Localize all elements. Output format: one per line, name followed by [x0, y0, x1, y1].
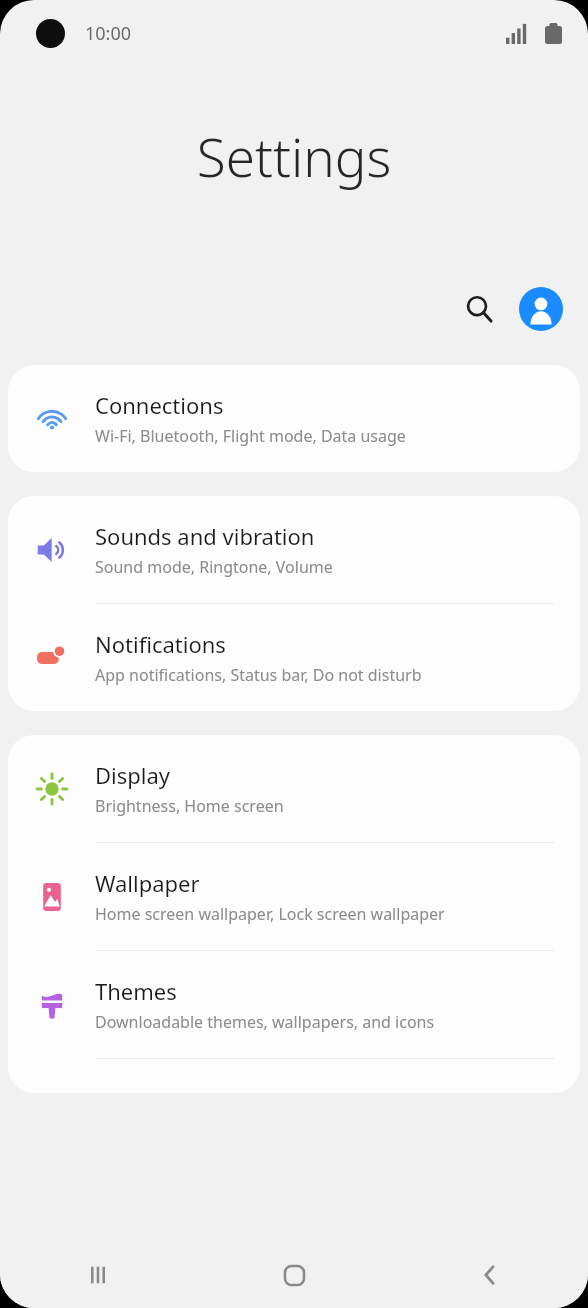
staticText: Wi-Fi, Bluetooth, Flight mode, Data usag…: [95, 425, 406, 447]
button[interactable]: Account: [518, 286, 564, 332]
button[interactable]: Sounds and vibration: [8, 496, 580, 603]
button[interactable]: Notifications: [8, 604, 580, 711]
button[interactable]: Search: [454, 284, 504, 334]
staticText: Sound mode, Ringtone, Volume: [95, 556, 333, 578]
staticText: 10:00: [85, 21, 132, 46]
staticText: Settings: [0, 120, 588, 192]
staticText: Display: [95, 760, 171, 790]
staticText: Sounds and vibration: [95, 521, 315, 551]
staticText: Downloadable themes, wallpapers, and ico…: [95, 1011, 435, 1033]
staticText: App notifications, Status bar, Do not di…: [95, 664, 422, 686]
staticText: Brightness, Home screen: [95, 795, 284, 817]
button[interactable]: Recents: [0, 1242, 196, 1308]
staticText: Home screen wallpaper, Lock screen wallp…: [95, 903, 445, 925]
button[interactable]: Wallpaper: [8, 843, 580, 950]
button[interactable]: Themes: [8, 951, 580, 1058]
button[interactable]: Back: [392, 1242, 588, 1308]
button[interactable]: Home: [196, 1242, 392, 1308]
staticText: Notifications: [95, 629, 226, 659]
staticText: Wallpaper: [95, 868, 200, 898]
staticText: Themes: [95, 976, 177, 1006]
button[interactable]: Connections: [8, 365, 580, 472]
button[interactable]: Display: [8, 735, 580, 842]
staticText: Connections: [95, 390, 224, 420]
